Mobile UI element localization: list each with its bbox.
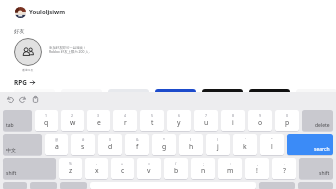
button[interactable] — [296, 89, 336, 101]
button[interactable] — [298, 182, 333, 189]
button[interactable]: shift — [299, 158, 333, 179]
staticText: g — [162, 142, 167, 151]
staticText: x — [95, 166, 99, 175]
button[interactable]: search — [287, 134, 333, 155]
staticText: 好友 — [14, 28, 25, 35]
staticText: ' — [245, 137, 246, 142]
staticText: & — [136, 137, 139, 142]
button[interactable]: 4 — [113, 110, 137, 131]
button[interactable]: = — [137, 158, 161, 179]
staticText: h — [189, 142, 194, 151]
staticText: 7 — [205, 113, 208, 118]
staticText: e — [97, 118, 101, 127]
staticText: 9 — [259, 113, 262, 118]
staticText: t — [151, 118, 154, 127]
button[interactable]: : — [218, 158, 242, 179]
staticText: n — [201, 166, 206, 175]
staticText: j — [217, 142, 219, 151]
staticText: q — [44, 118, 49, 127]
button[interactable] — [259, 182, 295, 189]
button[interactable]: delete — [302, 110, 333, 131]
staticText: z — [69, 166, 73, 175]
staticText: ? — [283, 166, 286, 175]
button[interactable] — [249, 89, 290, 101]
button[interactable]: Add friends — [14, 38, 42, 66]
staticText: ) — [217, 137, 219, 142]
button[interactable]: ( — [179, 134, 203, 155]
button[interactable] — [30, 182, 57, 189]
button[interactable]: % — [59, 158, 82, 179]
staticText: y — [177, 118, 181, 127]
button[interactable]: 1 — [35, 110, 58, 131]
staticText: 8 — [232, 113, 235, 118]
staticText: l — [271, 142, 273, 151]
staticText: w — [70, 118, 76, 127]
button[interactable]: . — [272, 158, 296, 179]
staticText: - — [96, 161, 98, 166]
staticText: shift — [6, 170, 17, 177]
staticText: @ — [55, 137, 59, 142]
staticText: c — [121, 166, 125, 175]
button[interactable] — [202, 89, 243, 101]
button[interactable] — [3, 182, 27, 189]
button[interactable]: Undo — [5, 94, 16, 105]
staticText: 3 — [97, 113, 100, 118]
button[interactable]: # — [71, 134, 95, 155]
button[interactable]: + — [111, 158, 134, 179]
button[interactable]: ' — [233, 134, 257, 155]
button[interactable]: ) — [206, 134, 230, 155]
button[interactable]: 中文 — [3, 134, 42, 155]
button[interactable]: Redo — [17, 94, 28, 105]
staticText: 5 — [151, 113, 154, 118]
button[interactable] — [61, 89, 102, 101]
staticText: $ — [109, 137, 112, 142]
staticText: 添加好友即可一起游戏！ Roblox 好友上限为 200 人。 — [49, 46, 93, 54]
button[interactable]: Youloljsiwm — [29, 8, 66, 16]
button[interactable]: " — [260, 134, 284, 155]
button[interactable] — [155, 89, 196, 101]
button[interactable]: 0 — [275, 110, 299, 131]
button[interactable]: / — [164, 158, 188, 179]
button[interactable]: RPG — [14, 78, 35, 87]
button[interactable]: 9 — [248, 110, 272, 131]
button[interactable]: 6 — [167, 110, 191, 131]
staticText: RPG — [14, 78, 27, 87]
button[interactable]: tab — [3, 110, 32, 131]
button[interactable]: 7 — [194, 110, 218, 131]
staticText: 2 — [71, 113, 74, 118]
staticText: m — [227, 166, 234, 175]
staticText: u — [204, 118, 209, 127]
staticText: 6 — [178, 113, 181, 118]
staticText: r — [124, 118, 127, 127]
button[interactable]: 8 — [221, 110, 245, 131]
staticText: * — [163, 137, 165, 142]
button[interactable]: ; — [191, 158, 215, 179]
button[interactable]: shift — [3, 158, 56, 179]
button[interactable] — [60, 182, 87, 189]
button[interactable]: Profile — [15, 7, 26, 18]
button[interactable]: Paste — [30, 94, 41, 105]
staticText: tab — [6, 122, 14, 129]
button[interactable]: - — [85, 158, 108, 179]
button[interactable]: 3 — [87, 110, 110, 131]
staticText: d — [108, 142, 113, 151]
staticText: f — [136, 142, 139, 151]
button[interactable]: @ — [45, 134, 68, 155]
staticText: : — [230, 161, 231, 166]
staticText: ( — [190, 137, 192, 142]
button[interactable]: $ — [98, 134, 122, 155]
button[interactable] — [14, 89, 55, 101]
button[interactable]: 5 — [140, 110, 164, 131]
staticText: / — [175, 161, 177, 166]
button[interactable]: & — [125, 134, 149, 155]
staticText: 0 — [286, 113, 289, 118]
button[interactable]: , — [245, 158, 269, 179]
staticText: o — [258, 118, 263, 127]
staticText: 中文 — [6, 147, 16, 153]
staticText: s — [81, 142, 85, 151]
button[interactable]: * — [152, 134, 176, 155]
staticText: 4 — [124, 113, 127, 118]
button[interactable]: 2 — [61, 110, 84, 131]
